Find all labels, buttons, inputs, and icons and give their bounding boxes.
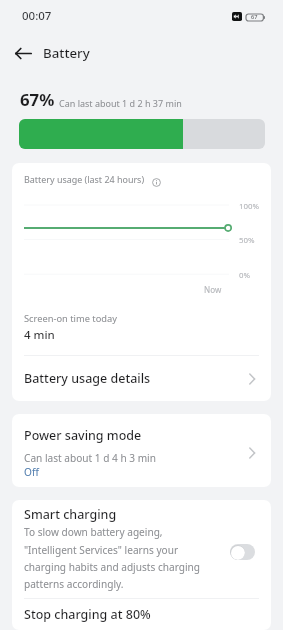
staticText: 0% [239, 270, 251, 281]
staticText: Battery [43, 44, 90, 62]
button[interactable]: Stop charging at 80% [12, 599, 271, 630]
staticText: Stop charging at 80% [24, 606, 151, 623]
staticText: 67 [251, 13, 258, 21]
button[interactable]: Power saving mode [12, 414, 271, 487]
staticText: Smart charging [24, 506, 117, 523]
staticText: 00:07 [22, 8, 52, 24]
staticText: Off [24, 465, 39, 479]
button[interactable]: Back [10, 40, 36, 66]
button[interactable]: Smart charging [12, 500, 271, 598]
button[interactable]: Battery usage details [12, 356, 271, 401]
staticText: Can last about 1 d 4 h 3 min [24, 451, 156, 465]
staticText: Battery usage details [24, 370, 151, 387]
staticText: 100% [239, 201, 260, 212]
staticText: Battery usage (last 24 hours) [24, 173, 145, 185]
staticText: Can last about 1 d 2 h 37 min [59, 97, 182, 109]
staticText: 67% [20, 88, 55, 111]
staticText: 50% [239, 235, 255, 246]
staticText: 4 min [24, 327, 55, 343]
staticText: Screen-on time today [24, 312, 117, 325]
staticText: Now [204, 284, 222, 295]
button[interactable]: Smart charging [230, 544, 255, 560]
staticText: To slow down battery ageing, "Intelligen… [24, 525, 200, 591]
staticText: Power saving mode [24, 427, 142, 444]
